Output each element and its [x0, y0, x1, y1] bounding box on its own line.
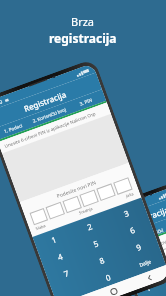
staticText: registracija [49, 30, 117, 46]
staticText: Podesite novi PIN [137, 234, 166, 255]
button[interactable]: Back [129, 265, 166, 291]
button[interactable]: 1. Podaci [116, 229, 143, 248]
button[interactable] [150, 252, 161, 266]
staticText: Brza [71, 14, 95, 29]
button[interactable]: 1. Podaci [0, 116, 33, 140]
button[interactable] [46, 202, 64, 219]
button[interactable] [97, 184, 115, 200]
button[interactable] [114, 178, 132, 194]
staticText: 2. Korisnički broj [139, 220, 166, 240]
staticText: 4 [56, 250, 64, 262]
button[interactable] [80, 190, 98, 207]
staticText: Slaba [35, 223, 47, 231]
staticText: 1 [50, 233, 58, 245]
button[interactable] [30, 209, 47, 225]
staticText: 6 [128, 224, 137, 236]
staticText: Podesite novi PIN [56, 179, 98, 200]
staticText: 2. Korisnički broj [32, 106, 67, 124]
button[interactable] [63, 196, 81, 213]
staticText: Slaba [136, 271, 148, 279]
button[interactable]: 9 [117, 231, 160, 261]
staticText: 1. Podaci [3, 122, 23, 134]
button[interactable]: 1 [134, 277, 162, 296]
button[interactable]: 3 [105, 197, 148, 228]
staticText: Unesite 6-cifreni PIN iz aplikacije Nali… [4, 110, 97, 149]
button[interactable]: 0 [87, 261, 129, 292]
staticText: 3 [122, 207, 131, 219]
staticText: Jaka [125, 191, 134, 198]
button[interactable]: 4 [139, 291, 166, 296]
staticText: 5 [92, 237, 100, 249]
button[interactable]: Dalje [123, 248, 166, 278]
staticText: Registracija [22, 88, 68, 114]
button[interactable]: 5 [162, 282, 166, 296]
button[interactable]: 2. Korisnički broj [139, 220, 166, 240]
staticText: 11:20 [0, 98, 3, 109]
button[interactable]: 5 [74, 228, 117, 258]
staticText: Registracija [125, 204, 166, 229]
staticText: 0 [104, 271, 112, 283]
button[interactable]: 3. PIN [162, 212, 166, 232]
button[interactable] [141, 255, 152, 269]
button[interactable] [51, 275, 93, 296]
staticText: Dalje [138, 258, 152, 269]
staticText: Srednja [159, 261, 166, 271]
staticText: 1 [144, 282, 152, 294]
button[interactable]: 7 [45, 258, 87, 288]
staticText: 11:20 [112, 206, 127, 217]
staticText: 7 [62, 267, 71, 279]
button[interactable]: Home [93, 278, 134, 296]
staticText: 1. Podaci [119, 232, 140, 245]
button[interactable]: Recents [57, 292, 97, 296]
button[interactable]: 1 [32, 224, 74, 254]
staticText: Srednja [78, 206, 94, 215]
button[interactable]: 4 [39, 241, 80, 271]
staticText: 8 [98, 254, 106, 266]
button[interactable]: 3. PIN [65, 89, 106, 114]
button[interactable] [160, 248, 166, 262]
button[interactable]: 6 [111, 214, 154, 245]
button[interactable]: 2 [156, 268, 166, 291]
staticText: 9 [134, 241, 143, 253]
button[interactable]: 2 [68, 211, 111, 241]
button[interactable]: 2. Korisnički broj [29, 103, 70, 127]
staticText: 2 [85, 220, 94, 232]
staticText: 3. PIN [79, 97, 93, 107]
button[interactable]: 8 [80, 245, 123, 275]
button[interactable] [132, 259, 142, 272]
